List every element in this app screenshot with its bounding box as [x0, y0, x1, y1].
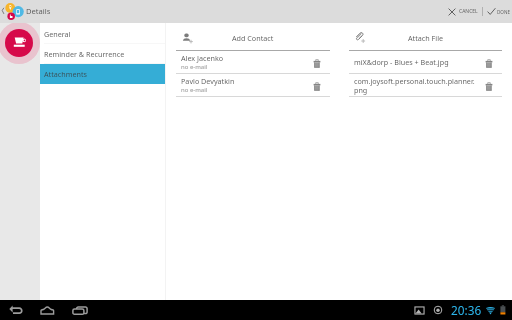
- button[interactable]: Delete: [311, 59, 323, 68]
- button[interactable]: Home: [40, 305, 56, 315]
- button[interactable]: Reminder & Recurrence: [40, 44, 165, 64]
- staticText: Pavlo Devyatkin: [181, 76, 235, 86]
- button[interactable]: General: [40, 24, 165, 44]
- staticText: Add Contact: [232, 33, 274, 43]
- staticText: 20:36: [451, 302, 482, 318]
- button[interactable]: Add Contact: [176, 26, 330, 50]
- staticText: Attach File: [408, 33, 444, 43]
- staticText: DONE: [497, 9, 510, 15]
- button[interactable]: com.joysoft.personal.touch.planner.png: [349, 74, 502, 96]
- other: Alarm: [434, 306, 442, 314]
- button[interactable]: Attachments: [40, 64, 165, 84]
- staticText: Alex Jacenko: [181, 53, 224, 63]
- button[interactable]: Delete: [483, 82, 495, 91]
- button[interactable]: miX&dorp - Blues + Beat.jpg: [349, 51, 502, 73]
- button[interactable]: CANCEL: [446, 0, 482, 23]
- staticText: Details: [26, 6, 51, 16]
- button[interactable]: Alex Jacenko: [176, 51, 330, 73]
- button[interactable]: Task icon: [0, 22, 40, 64]
- button[interactable]: Pavlo Devyatkin: [176, 74, 330, 96]
- staticText: Attachments: [44, 69, 87, 79]
- other: Battery: [500, 305, 506, 315]
- staticText: Reminder & Recurrence: [44, 49, 125, 59]
- button[interactable]: Back: [8, 302, 24, 318]
- staticText: CANCEL: [459, 8, 478, 15]
- other: Wi-Fi: [486, 306, 495, 315]
- other: Screenshot: [414, 306, 425, 315]
- staticText: miX&dorp - Blues + Beat.jpg: [354, 57, 449, 67]
- button[interactable]: DONE: [483, 0, 512, 23]
- staticText: General: [44, 29, 71, 39]
- button[interactable]: Attach File: [349, 26, 502, 50]
- staticText: com.joysoft.personal.touch.planner.png: [354, 76, 476, 95]
- other: Attach File: [355, 32, 368, 45]
- staticText: no e-mail: [181, 86, 208, 94]
- staticText: no e-mail: [181, 63, 208, 71]
- button[interactable]: Recents: [72, 302, 89, 319]
- button[interactable]: Delete: [483, 59, 495, 68]
- button[interactable]: Back: [0, 7, 6, 15]
- button[interactable]: Delete: [311, 82, 323, 91]
- other: Add Contact: [181, 33, 194, 46]
